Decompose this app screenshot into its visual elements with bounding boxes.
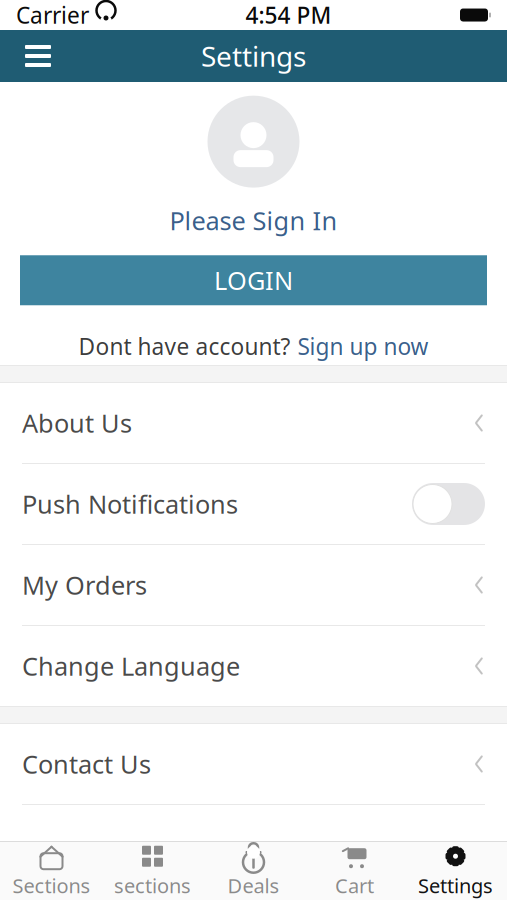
- staticText: Please Sign In: [169, 204, 337, 237]
- button[interactable]: Settings: [405, 842, 506, 900]
- staticText: Settings: [418, 872, 493, 899]
- staticText: Change Language: [22, 649, 240, 683]
- staticText: Dont have account?: [78, 331, 290, 361]
- button[interactable]: About Us: [0, 383, 507, 463]
- button[interactable]: sections: [102, 842, 203, 900]
- button[interactable]: Deals: [203, 842, 304, 900]
- staticText: Sign up now: [297, 331, 428, 361]
- button[interactable]: Menu: [10, 30, 66, 82]
- button[interactable]: Push Notifications: [412, 483, 485, 525]
- button[interactable]: My Orders: [0, 545, 507, 625]
- staticText: About Us: [22, 406, 132, 440]
- button[interactable]: Change Language: [0, 626, 507, 706]
- staticText: Cart: [335, 872, 374, 899]
- button[interactable]: Cart: [304, 842, 405, 900]
- staticText: My Orders: [22, 568, 147, 602]
- staticText: sections: [114, 872, 191, 899]
- button[interactable]: Contact Us: [0, 724, 507, 804]
- staticText: Contact Us: [22, 747, 151, 781]
- button[interactable]: Sections: [1, 842, 102, 900]
- staticText: Deals: [227, 872, 279, 899]
- staticText: Push Notifications: [22, 487, 238, 521]
- button[interactable]: LOGIN: [20, 255, 487, 305]
- staticText: 4:54 PM: [245, 0, 331, 30]
- button[interactable]: Sign up now: [297, 331, 428, 361]
- staticText: Sections: [12, 872, 90, 899]
- staticText: Carrier: [16, 0, 89, 30]
- staticText: Settings: [201, 37, 306, 75]
- staticText: LOGIN: [214, 263, 293, 297]
